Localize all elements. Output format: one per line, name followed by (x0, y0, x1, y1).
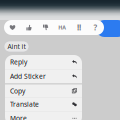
staticText: Copy (10, 86, 25, 95)
button[interactable]: Emphasize (71, 20, 87, 35)
button[interactable]: Laugh (54, 20, 71, 35)
staticText: ? (93, 22, 97, 33)
staticText: Add Sticker (10, 72, 46, 81)
staticText: !! (77, 22, 81, 33)
staticText: HA (58, 24, 66, 31)
button[interactable]: Reply (5, 55, 82, 69)
button[interactable]: Question (87, 20, 104, 35)
button[interactable]: Add Sticker (5, 69, 82, 83)
staticText: Translate (10, 100, 39, 109)
button[interactable]: Translate (5, 97, 82, 111)
button[interactable]: More (5, 111, 82, 120)
staticText: More (10, 114, 27, 120)
button[interactable]: Like (21, 20, 37, 35)
button[interactable]: Copy (5, 83, 82, 97)
staticText: Aint it (7, 42, 25, 51)
button[interactable]: Love (4, 20, 21, 35)
button[interactable]: Dislike (37, 20, 54, 35)
staticText: Reply (10, 58, 27, 66)
